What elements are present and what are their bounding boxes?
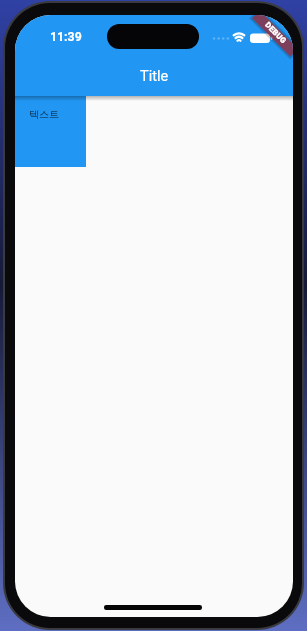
button[interactable] xyxy=(15,15,293,96)
staticText: DEBUG xyxy=(263,20,289,46)
staticText: Title xyxy=(140,68,169,85)
staticText: 텍스트 xyxy=(29,108,59,121)
staticText: 11:39 xyxy=(50,30,82,44)
button[interactable]: 텍스트 xyxy=(15,96,86,167)
